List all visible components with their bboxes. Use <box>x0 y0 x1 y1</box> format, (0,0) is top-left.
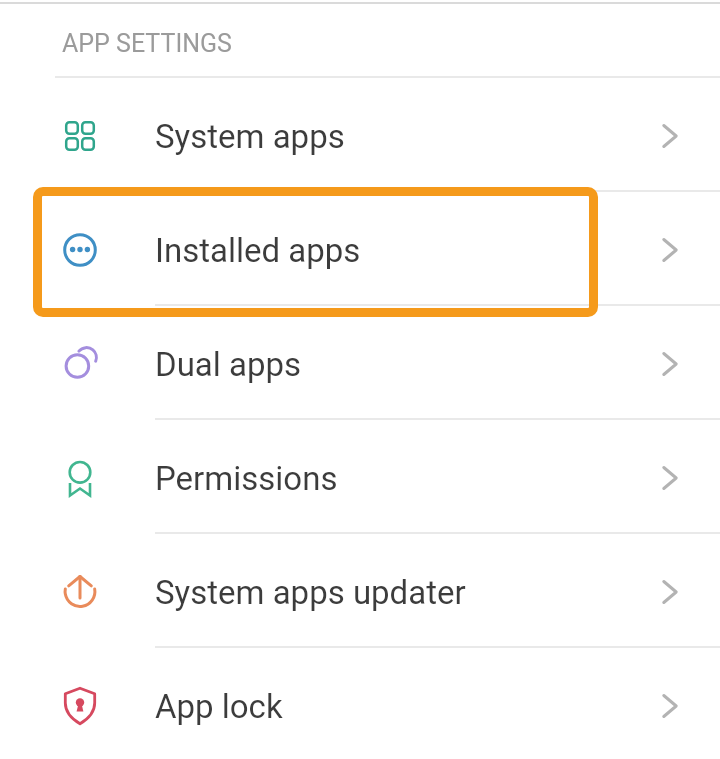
button[interactable]: Permissions <box>0 421 720 535</box>
staticText: Dual apps <box>155 345 302 384</box>
button[interactable]: App lock <box>0 649 720 759</box>
button[interactable]: System apps updater <box>0 535 720 649</box>
button[interactable]: Installed apps <box>0 193 720 307</box>
staticText: Installed apps <box>155 231 361 270</box>
staticText: App lock <box>155 687 283 726</box>
staticText: APP SETTINGS <box>62 29 232 58</box>
staticText: System apps updater <box>155 573 466 612</box>
button[interactable]: Dual apps <box>0 307 720 421</box>
button[interactable]: System apps <box>0 79 720 193</box>
staticText: System apps <box>155 117 345 156</box>
staticText: Permissions <box>155 459 338 498</box>
